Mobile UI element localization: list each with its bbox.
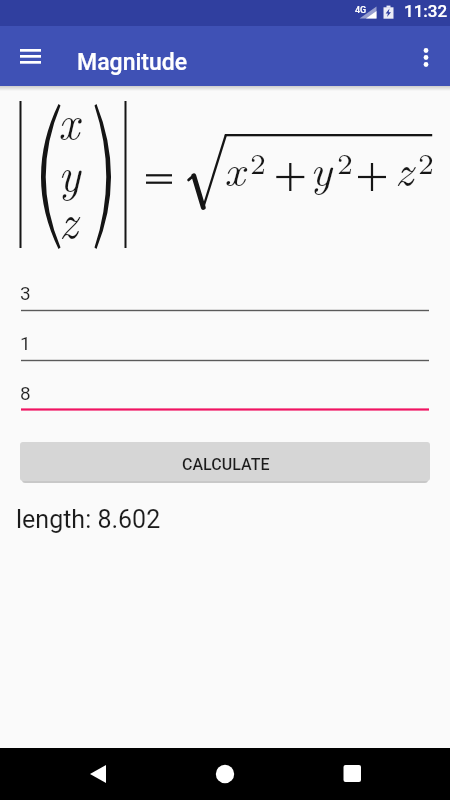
button[interactable] xyxy=(326,748,378,800)
staticText: 4G xyxy=(355,5,367,16)
staticText: y xyxy=(58,139,81,204)
staticText: x xyxy=(224,135,245,199)
staticText: 2 xyxy=(250,143,266,183)
button[interactable]: 1 xyxy=(0,318,450,362)
staticText: y xyxy=(310,135,332,199)
staticText: length: 8.602 xyxy=(16,505,161,534)
staticText: Magnitude xyxy=(77,49,188,76)
staticText: z xyxy=(395,135,414,199)
staticText: 2 xyxy=(418,143,434,183)
staticText: x xyxy=(58,87,80,152)
button[interactable] xyxy=(10,33,52,79)
staticText: 2 xyxy=(337,143,353,183)
button[interactable] xyxy=(199,748,251,800)
button[interactable]: CALCULATE xyxy=(20,442,430,481)
button[interactable]: 3 xyxy=(0,268,450,312)
staticText: 1 xyxy=(20,332,31,354)
button[interactable] xyxy=(408,33,446,79)
staticText: 8 xyxy=(20,382,31,404)
staticText: z xyxy=(59,186,78,251)
button[interactable] xyxy=(70,748,122,800)
staticText: 11:32 xyxy=(404,1,448,21)
staticText: CALCULATE xyxy=(182,455,270,474)
staticText: 3 xyxy=(20,282,31,304)
button[interactable]: 8 xyxy=(0,368,450,412)
